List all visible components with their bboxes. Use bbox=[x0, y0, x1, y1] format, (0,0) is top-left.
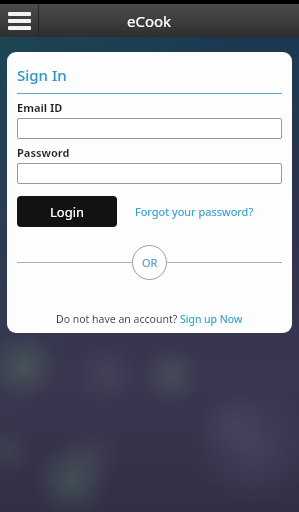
button[interactable] bbox=[17, 118, 282, 139]
staticText: Do not have an account? Sign up Now bbox=[56, 312, 243, 326]
staticText: Sign In bbox=[17, 65, 67, 85]
button[interactable] bbox=[0, 4, 38, 37]
staticText: Password bbox=[17, 145, 70, 160]
button[interactable]: Do not have an account? Sign up Now bbox=[7, 312, 292, 326]
button[interactable]: Forgot your password? bbox=[135, 204, 254, 219]
staticText: Email ID bbox=[17, 100, 63, 115]
staticText: Login bbox=[50, 203, 85, 221]
button[interactable] bbox=[17, 163, 282, 184]
staticText: OR bbox=[142, 255, 158, 270]
button[interactable]: Login bbox=[17, 196, 117, 227]
staticText: eCook bbox=[127, 11, 172, 31]
